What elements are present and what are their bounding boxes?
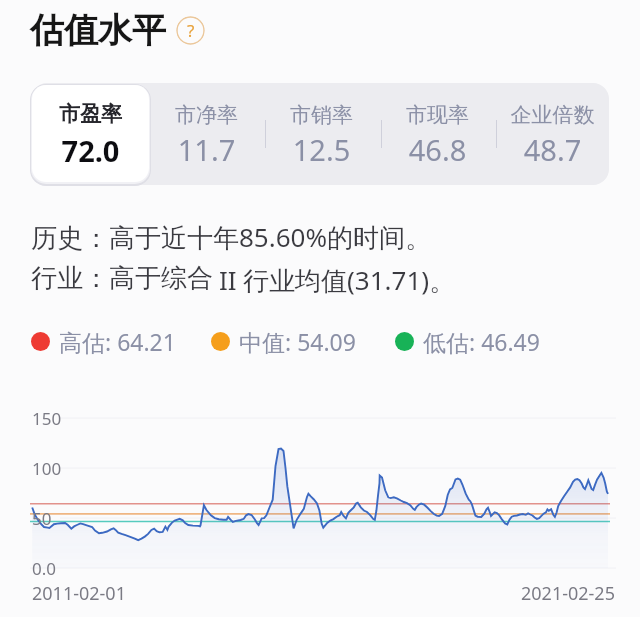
staticText: 中值: 54.09 <box>239 326 356 356</box>
staticText: 市净率 <box>149 102 264 128</box>
staticText: 市销率 <box>264 102 379 128</box>
staticText: 历史：高于近十年85.60%的时间。 <box>31 219 432 255</box>
button[interactable]: 市现率 <box>380 83 495 185</box>
staticText: 11.7 <box>149 130 264 169</box>
staticText: 市现率 <box>380 102 495 128</box>
button[interactable]: 市净率 <box>149 83 264 185</box>
staticText: ? <box>187 19 195 42</box>
staticText: 150 <box>32 407 62 430</box>
staticText: 低估: 46.49 <box>423 326 540 356</box>
button[interactable]: 低估: 46.49 <box>395 326 540 356</box>
staticText: 行业均值(31.71)。 <box>243 262 456 298</box>
staticText: 2011-02-01 <box>32 581 126 606</box>
button[interactable]: 市销率 <box>264 83 379 185</box>
staticText: 市盈率 <box>32 101 149 127</box>
button[interactable]: 市盈率 <box>32 85 149 182</box>
button[interactable]: 高估: 64.21 <box>31 326 176 356</box>
button[interactable]: 中值: 54.09 <box>211 326 356 356</box>
button[interactable]: 说明 <box>176 16 205 45</box>
staticText: 12.5 <box>264 130 379 169</box>
staticText: 50 <box>32 507 52 530</box>
staticText: 2021-02-25 <box>521 581 615 606</box>
staticText: 48.7 <box>495 130 610 169</box>
staticText: 100 <box>32 457 62 480</box>
staticText: 46.8 <box>380 130 495 169</box>
staticText: 企业倍数 <box>495 102 610 128</box>
staticText: 0.0 <box>32 557 57 580</box>
staticText: 72.0 <box>32 131 149 170</box>
staticText: 行业：高于综合 <box>31 262 213 295</box>
staticText: 高估: 64.21 <box>59 326 176 356</box>
staticText: II <box>219 262 237 297</box>
button[interactable]: 企业倍数 <box>495 83 610 185</box>
staticText: 估值水平 <box>30 9 166 52</box>
